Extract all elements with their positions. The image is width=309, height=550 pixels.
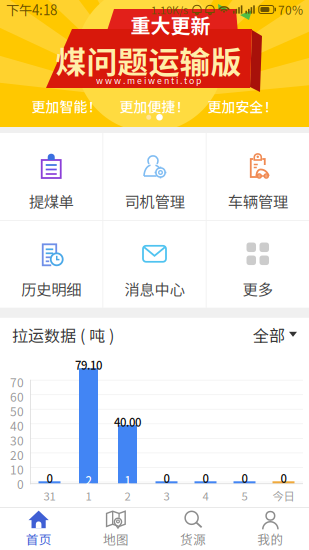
staticText: 1 (85, 487, 91, 504)
staticText: 重大更新 (130, 10, 210, 39)
staticText: 更加便捷！ (119, 96, 189, 116)
staticText: 首页 (26, 530, 52, 548)
button[interactable]: 车辆管理 (206, 133, 309, 220)
staticText: 拉运数据 ( 吨 ) (12, 323, 114, 346)
staticText: 0 (280, 470, 286, 486)
staticText: 2 (124, 487, 130, 504)
staticText: 1.10K/s (151, 2, 188, 17)
staticText: 历史明细 (21, 278, 81, 300)
staticText: 全部 (253, 323, 285, 346)
staticText: 司机管理 (124, 190, 184, 212)
staticText: 20 (10, 446, 24, 463)
staticText: 地图 (103, 530, 129, 548)
staticText: 70% (278, 1, 303, 18)
button[interactable]: 司机管理 (103, 133, 206, 220)
button[interactable]: 地图 (77, 508, 154, 550)
staticText: 60 (10, 388, 24, 405)
staticText: 0 (202, 470, 208, 486)
staticText: 今日 (272, 487, 294, 504)
button[interactable]: 更多 (206, 221, 309, 308)
staticText: 40.00 (114, 414, 141, 430)
staticText: 4 (202, 487, 208, 504)
staticText: 10 (10, 461, 24, 478)
staticText: 30 (10, 431, 24, 449)
staticText: 3 (163, 487, 169, 504)
staticText: 煤问题运输版 (55, 38, 241, 82)
staticText: 50 (10, 402, 24, 420)
staticText: 5 (241, 487, 247, 504)
staticText: 70 (10, 373, 24, 391)
staticText: 31 (43, 487, 55, 504)
staticText: 更加智能！ (31, 96, 101, 116)
button[interactable]: 全部 (253, 323, 297, 346)
staticText: w w w . m e i w e n t i . t o p (96, 74, 201, 86)
button[interactable]: 提煤单 (0, 133, 102, 220)
button[interactable]: 消息中心 (103, 221, 206, 308)
staticText: 0 (163, 470, 169, 486)
staticText: 提煤单 (29, 190, 74, 212)
staticText: 更多 (243, 278, 273, 300)
button[interactable]: 历史明细 (0, 221, 102, 308)
staticText: 0 (241, 470, 247, 486)
button[interactable]: 我的 (232, 508, 309, 550)
staticText: 下午4:18 (6, 0, 57, 19)
staticText: 车辆管理 (228, 190, 288, 212)
button[interactable]: 首页 (0, 508, 77, 550)
staticText: 79.10 (75, 357, 102, 373)
staticText: 2 (85, 472, 91, 488)
staticText: 消息中心 (124, 278, 184, 300)
staticText: 0 (17, 475, 24, 493)
staticText: 货源 (180, 530, 206, 548)
staticText: 0 (46, 470, 52, 486)
staticText: 40 (10, 417, 24, 434)
staticText: 我的 (257, 530, 283, 548)
button[interactable]: 货源 (154, 508, 232, 550)
staticText: 1 (124, 472, 130, 488)
staticText: 更加安全！ (207, 96, 277, 116)
